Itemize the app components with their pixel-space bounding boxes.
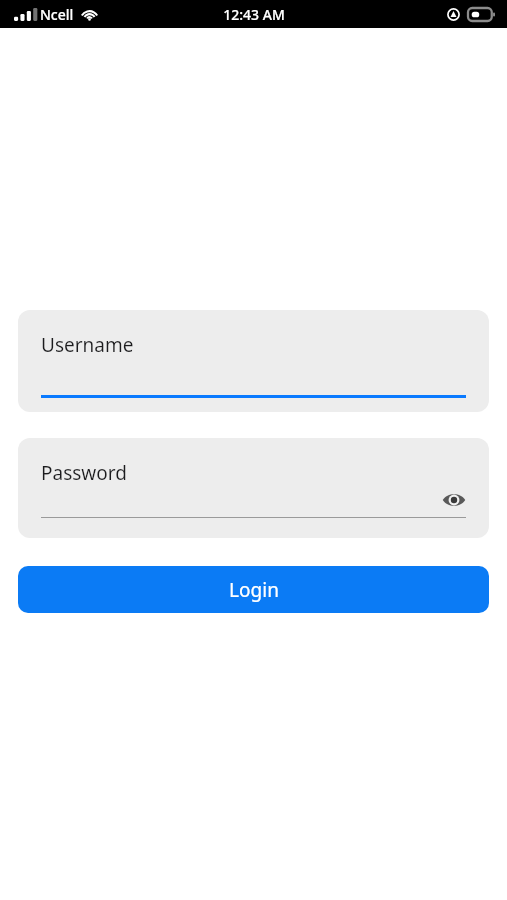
button[interactable]: Username bbox=[18, 310, 489, 412]
staticText: Login bbox=[229, 577, 279, 603]
staticText: Ncell bbox=[40, 5, 74, 24]
button[interactable]: Password bbox=[18, 438, 489, 538]
staticText: Password bbox=[41, 460, 127, 486]
staticText: 12:43 AM bbox=[223, 5, 285, 24]
button[interactable]: Show password bbox=[441, 487, 467, 513]
button[interactable]: Login bbox=[18, 566, 489, 613]
staticText: Username bbox=[41, 332, 134, 358]
